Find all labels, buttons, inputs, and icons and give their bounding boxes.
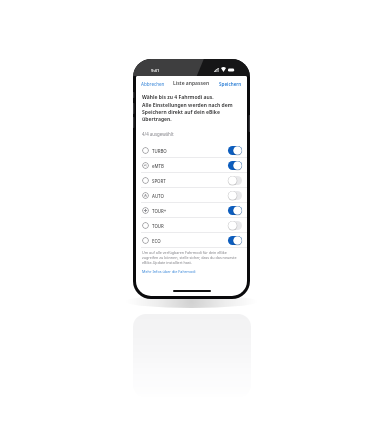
staticText: TOUR (152, 223, 164, 229)
staticText: TURBO (152, 148, 167, 154)
staticText: Liste anpassen (173, 80, 210, 87)
staticText: Um auf alle verfügbaren Fahrmodi für dei… (142, 250, 243, 265)
button[interactable]: Off (228, 176, 242, 185)
button[interactable]: Mehr Infos über die Fahrmodi (142, 269, 196, 274)
button[interactable]: On (228, 206, 242, 215)
staticText: AUTO (152, 193, 164, 199)
button[interactable]: TURBO (136, 143, 247, 158)
button[interactable]: On (228, 161, 242, 170)
staticText: ECO (152, 238, 161, 244)
staticText: Abbrechen (141, 81, 165, 87)
button[interactable]: AUTO (136, 188, 247, 203)
button[interactable]: On (228, 236, 242, 245)
button[interactable]: Off (228, 221, 242, 230)
staticText: Mehr Infos über die Fahrmodi (142, 269, 196, 274)
staticText: TOUR+ (152, 208, 167, 214)
button[interactable]: eMTB (136, 158, 247, 173)
button[interactable]: Off (228, 191, 242, 200)
staticText: 4/4 ausgewählt (142, 131, 174, 137)
staticText: SPORT (152, 178, 166, 184)
staticText: eMTB (152, 163, 164, 169)
button[interactable]: ECO (136, 233, 247, 248)
staticText: 9:41 (151, 68, 160, 74)
button[interactable]: TOUR (136, 218, 247, 233)
button[interactable]: TOUR+ (136, 203, 247, 218)
button[interactable]: SPORT (136, 173, 247, 188)
staticText: Wähle bis zu 4 Fahrmodi aus. Alle Einste… (142, 94, 244, 122)
button[interactable]: On (228, 146, 242, 155)
button[interactable]: Abbrechen (136, 78, 170, 90)
button[interactable]: Speichern (214, 78, 247, 90)
staticText: Speichern (219, 81, 242, 87)
